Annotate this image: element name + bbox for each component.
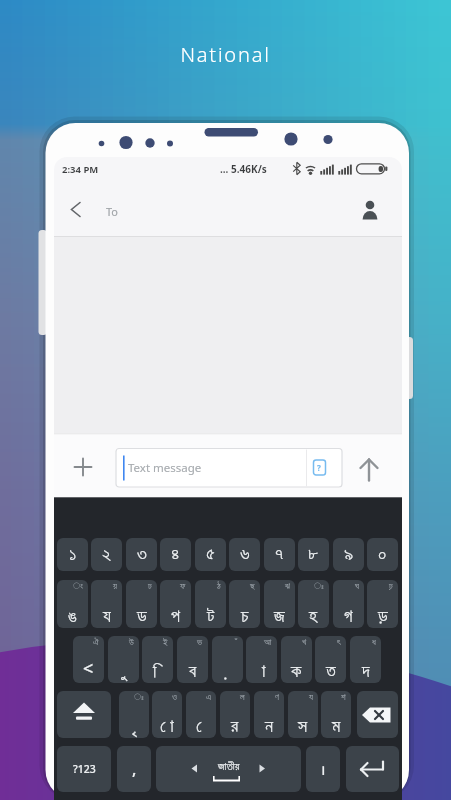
staticText: চ (241, 608, 249, 626)
staticText: ক (291, 663, 302, 681)
staticText: ঃ (134, 693, 144, 702)
staticText: ফ (180, 582, 186, 591)
staticText: হ (309, 608, 318, 626)
staticText: ন (265, 718, 273, 736)
button[interactable]: য (288, 691, 318, 738)
staticText: ং (73, 582, 83, 591)
button[interactable]: উ (108, 636, 139, 683)
staticText: ২ (102, 545, 112, 564)
button[interactable]: ও (152, 691, 182, 738)
staticText: ঘ (355, 582, 359, 591)
staticText: ৪ (171, 545, 180, 564)
staticText: ড় (378, 608, 388, 626)
button[interactable] (356, 196, 384, 224)
button[interactable]: ঃ (298, 580, 329, 628)
button[interactable] (355, 455, 383, 483)
button[interactable]: ৫ (195, 538, 226, 571)
staticText: , (132, 758, 137, 780)
button[interactable]: ১ (57, 538, 88, 571)
button[interactable]: ই (142, 636, 173, 683)
staticText: ি (153, 663, 162, 681)
button[interactable]: ণ (254, 691, 284, 738)
staticText: ঢ় (389, 582, 393, 591)
staticText: ... 5.46K/s (220, 162, 267, 176)
button[interactable]: এ (186, 691, 216, 738)
button[interactable]: , (117, 746, 151, 792)
button[interactable]: ঘ (333, 580, 364, 628)
button[interactable]: ঃ (119, 691, 149, 738)
staticText: ৮ (308, 545, 319, 564)
staticText: য় (113, 582, 117, 591)
button[interactable]: ৩ (126, 538, 157, 571)
button[interactable]: ঐ (73, 636, 104, 683)
button[interactable] (116, 448, 306, 487)
staticText: ণ (275, 693, 279, 702)
button[interactable]: ৪ (160, 538, 191, 571)
button[interactable]: ৯ (333, 538, 364, 571)
button[interactable]: ল (220, 691, 250, 738)
staticText: গ (344, 608, 353, 626)
button[interactable]: খ (281, 636, 312, 683)
button[interactable]: ৮ (298, 538, 329, 571)
button[interactable]: জাতীয় (156, 746, 301, 792)
button[interactable]: ?123 (57, 746, 111, 792)
staticText: । (320, 760, 326, 779)
button[interactable] (346, 746, 399, 792)
staticText: ঝ (285, 582, 290, 591)
staticText: স (298, 718, 308, 736)
staticText: ?123 (73, 762, 96, 776)
staticText: ঠ (217, 582, 221, 591)
button[interactable]: ফ (160, 580, 191, 628)
staticText: ঃ (314, 582, 324, 591)
button[interactable]: ৎ (315, 636, 346, 683)
button[interactable]: ধ (350, 636, 381, 683)
staticText: ট (207, 608, 215, 626)
staticText: To (106, 204, 119, 219)
staticText: জ (274, 608, 285, 626)
staticText: ো (160, 718, 174, 736)
button[interactable]: ২ (91, 538, 122, 571)
button[interactable]: ছ (229, 580, 260, 628)
button[interactable] (306, 449, 342, 487)
staticText: ৯ (344, 545, 354, 564)
staticText: ড (137, 608, 147, 626)
button[interactable]: ঢ় (367, 580, 398, 628)
staticText: ৬ (240, 545, 250, 564)
button[interactable]: ৬ (229, 538, 260, 571)
staticText: শ (341, 693, 346, 702)
staticText: ম (332, 718, 341, 736)
staticText: ধ (372, 638, 376, 647)
staticText: া (257, 663, 266, 681)
staticText: জাতীয় (218, 761, 240, 772)
button[interactable]: ং (57, 580, 88, 628)
button[interactable] (69, 453, 97, 481)
staticText: আ (264, 638, 272, 647)
staticText: ও (172, 693, 177, 702)
button[interactable]: ঠ (195, 580, 226, 628)
button[interactable]: ভ (177, 636, 208, 683)
staticText: ঐ (93, 638, 99, 647)
button[interactable]: ঁ (212, 636, 243, 683)
button[interactable]: ঢ (126, 580, 157, 628)
button[interactable] (357, 691, 398, 738)
staticText: ? (317, 462, 321, 473)
button[interactable]: ঝ (264, 580, 295, 628)
button[interactable]: আ (246, 636, 277, 683)
staticText: ব (189, 663, 197, 681)
staticText: ল (240, 693, 245, 702)
button[interactable]: ৭ (264, 538, 295, 571)
button[interactable]: য় (91, 580, 122, 628)
button[interactable]: শ (321, 691, 351, 738)
staticText: উ (129, 638, 134, 647)
button[interactable]: । (306, 746, 340, 792)
button[interactable] (62, 195, 90, 223)
staticText: National (0, 41, 451, 68)
button[interactable]: ০ (367, 538, 398, 571)
staticText: এ (206, 693, 211, 702)
staticText: ু (121, 663, 127, 681)
staticText: ৃ (131, 718, 137, 736)
staticText: ় (225, 663, 231, 681)
staticText: ৩ (137, 545, 147, 564)
button[interactable] (57, 691, 111, 738)
staticText: ঁ (235, 638, 238, 647)
